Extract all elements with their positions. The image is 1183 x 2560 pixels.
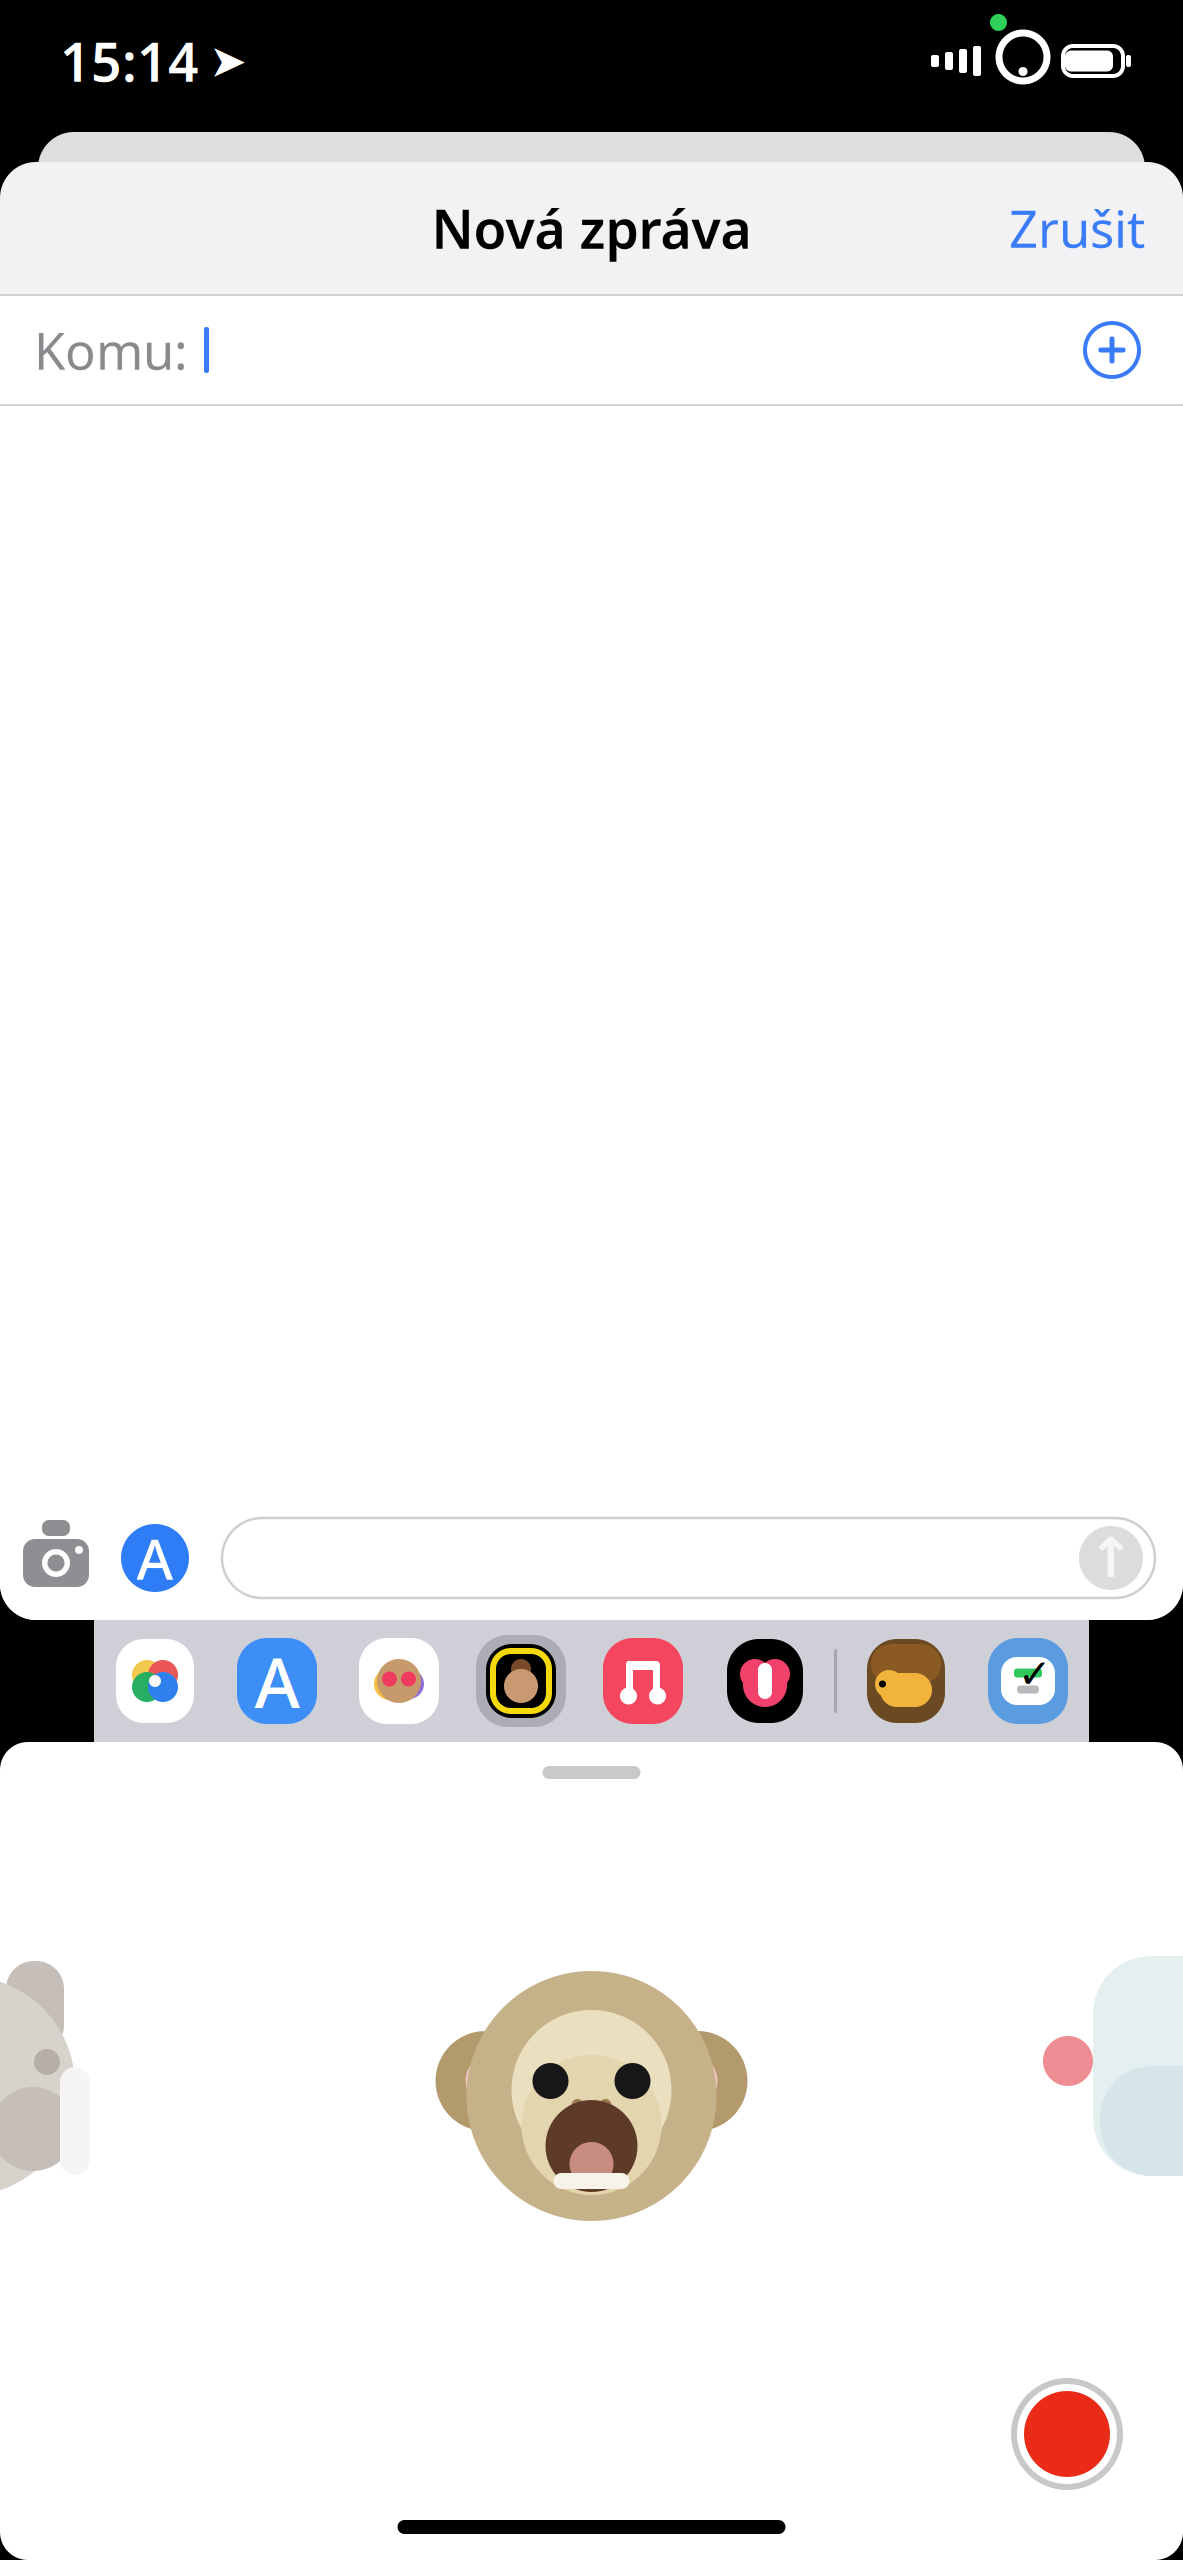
staticText: Zrušit [1009, 194, 1145, 262]
button[interactable]: Stickers [845, 1620, 967, 1742]
button[interactable]: Fitness [704, 1620, 826, 1742]
button[interactable]: Zrušit [993, 182, 1161, 274]
staticText: ➤ [209, 35, 247, 87]
staticText: A [254, 1635, 299, 1727]
button[interactable]: Apps [116, 1519, 194, 1597]
button[interactable]: Memoji Stickers [338, 1620, 460, 1742]
button[interactable]: Memoji [460, 1620, 582, 1742]
button[interactable]: Photos [94, 1620, 216, 1742]
button[interactable]: Send [1075, 1522, 1147, 1594]
staticText: A [136, 1521, 173, 1595]
staticText: Nová zpráva [431, 193, 751, 263]
button[interactable]: Record Memoji [1001, 2368, 1133, 2500]
button[interactable]: Camera [18, 1520, 94, 1596]
button[interactable]: Music [582, 1620, 704, 1742]
button[interactable]: Tasks [967, 1620, 1089, 1742]
staticText: 15:14 [60, 26, 199, 96]
button[interactable]: Add contact [1071, 309, 1153, 391]
staticText: ✓ [1018, 1651, 1052, 1697]
staticText: ↑ [1087, 1526, 1134, 1590]
button[interactable]: App Store [216, 1620, 338, 1742]
staticText: Komu: [34, 316, 188, 384]
